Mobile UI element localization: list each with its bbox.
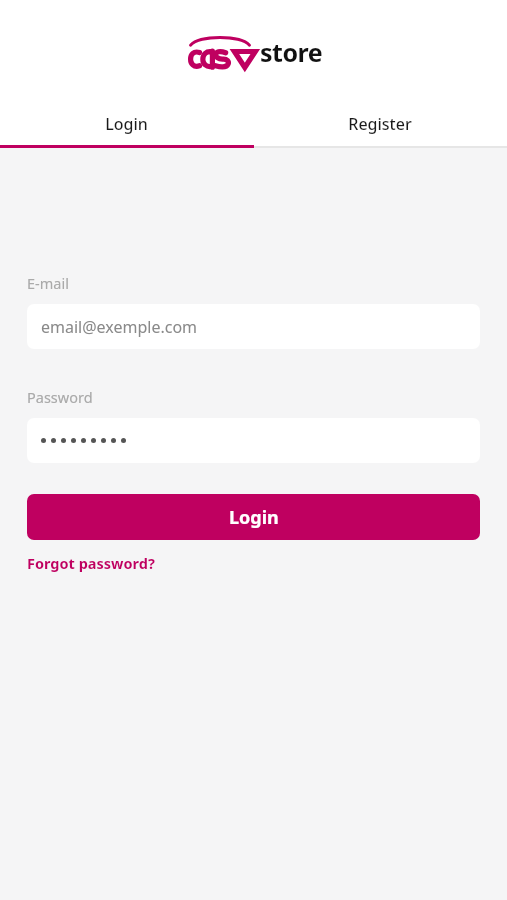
staticText: email@exemple.com xyxy=(41,316,198,338)
button[interactable]: Register xyxy=(253,100,507,148)
other: casv store logo xyxy=(184,35,256,69)
staticText: Forgot password? xyxy=(27,553,155,573)
staticText: Register xyxy=(348,113,412,135)
staticText: Login xyxy=(229,505,279,530)
staticText: Password xyxy=(27,387,93,407)
button[interactable]: Forgot password? xyxy=(27,553,155,573)
button[interactable]: Login xyxy=(27,494,480,540)
staticText: E-mail xyxy=(27,273,69,293)
staticText: Login xyxy=(105,113,148,135)
button[interactable]: Login xyxy=(0,100,253,148)
button[interactable] xyxy=(27,418,480,463)
staticText: store xyxy=(260,35,323,69)
button[interactable]: email@exemple.com xyxy=(27,304,480,349)
